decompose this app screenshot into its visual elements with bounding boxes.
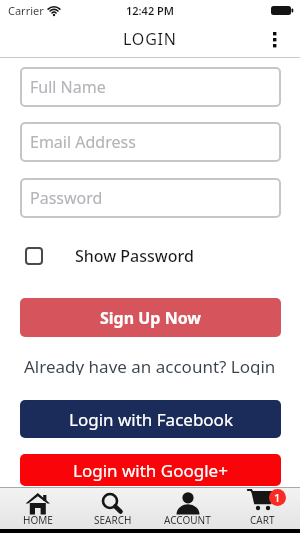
staticText: Full Name [30, 76, 106, 98]
staticText: Email Address [30, 131, 136, 153]
button[interactable]: SEARCH [75, 487, 150, 529]
staticText: 12:42 PM [0, 3, 300, 18]
button[interactable]: CART [225, 487, 300, 529]
staticText: SEARCH [94, 513, 132, 527]
staticText: ACCOUNT [164, 513, 211, 527]
button[interactable]: Email Address [20, 122, 281, 162]
button[interactable]: Sign Up Now [20, 298, 281, 337]
button[interactable]: Full Name [20, 67, 281, 107]
button[interactable]: Login with Facebook [20, 400, 281, 438]
staticText: Password [30, 187, 103, 209]
staticText: Sign Up Now [100, 307, 202, 329]
button[interactable]: Already have an account? Login [0, 355, 300, 375]
button[interactable]: HOME [0, 487, 75, 529]
staticText: LOGIN [123, 28, 177, 50]
staticText: Login with Google+ [73, 459, 228, 482]
staticText: Show Password [75, 245, 194, 267]
button[interactable]: Show Password [20, 240, 240, 272]
staticText: 1 [274, 490, 281, 505]
staticText: CART [250, 513, 275, 527]
button[interactable]: Login with Google+ [20, 454, 281, 486]
button[interactable]: ACCOUNT [150, 487, 225, 529]
staticText: Already have an account? Login [24, 355, 276, 375]
staticText: Carrier [8, 3, 44, 18]
staticText: Login with Facebook [69, 408, 233, 431]
staticText: HOME [23, 513, 53, 527]
button[interactable]: Password [20, 178, 281, 218]
button[interactable] [264, 21, 300, 57]
